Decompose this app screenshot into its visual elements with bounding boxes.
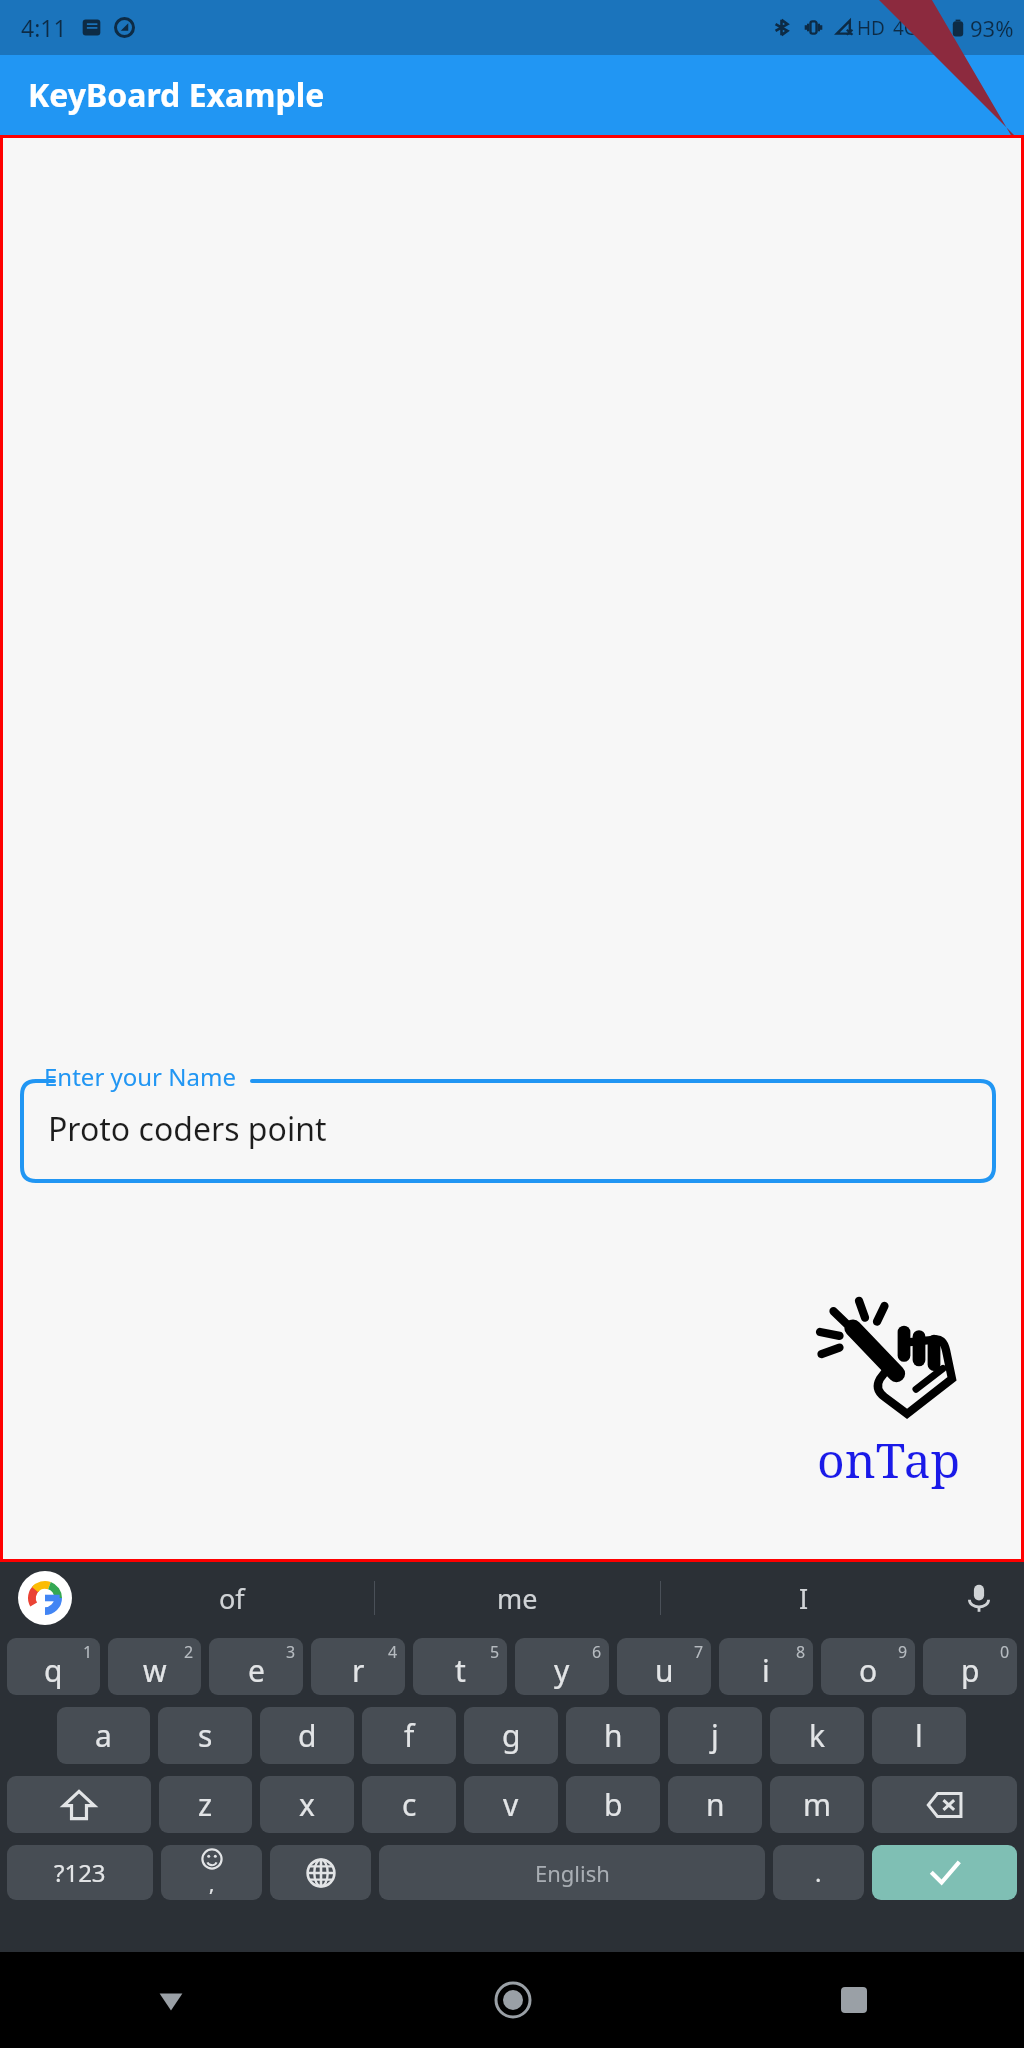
staticText: z <box>198 1784 213 1825</box>
staticText: o <box>859 1650 878 1691</box>
staticText: q <box>44 1650 63 1691</box>
staticText: v <box>503 1784 519 1825</box>
staticText: of <box>219 1580 245 1617</box>
staticText: d <box>298 1715 317 1756</box>
button[interactable]: p <box>923 1638 1017 1695</box>
button[interactable]: v <box>464 1776 558 1833</box>
button[interactable]: me <box>375 1562 660 1634</box>
button[interactable]: Change language <box>270 1845 371 1900</box>
staticText: m <box>803 1784 832 1825</box>
button[interactable]: s <box>158 1707 252 1764</box>
button[interactable]: I <box>661 1562 946 1634</box>
staticText: a <box>95 1715 112 1756</box>
button[interactable]: d <box>260 1707 354 1764</box>
staticText: 8 <box>796 1641 806 1663</box>
button[interactable]: e <box>209 1638 303 1695</box>
staticText: , <box>209 1870 215 1897</box>
staticText: onTap <box>817 1427 961 1492</box>
button[interactable]: m <box>770 1776 864 1833</box>
staticText: ?123 <box>54 1856 106 1889</box>
staticText: y <box>554 1650 570 1691</box>
button[interactable]: English <box>379 1845 765 1900</box>
staticText: h <box>604 1715 623 1756</box>
button[interactable]: ?123 <box>7 1845 153 1900</box>
staticText: Enter your Name <box>44 1060 236 1093</box>
button[interactable]: . <box>773 1845 864 1900</box>
staticText: 0 <box>1000 1641 1010 1663</box>
button[interactable]: i <box>719 1638 813 1695</box>
button[interactable]: b <box>566 1776 660 1833</box>
button[interactable]: f <box>362 1707 456 1764</box>
staticText: w <box>143 1650 167 1691</box>
staticText: 4:11 <box>21 12 67 43</box>
staticText: me <box>497 1580 538 1617</box>
staticText: l <box>915 1715 923 1756</box>
button[interactable]: Backspace <box>872 1776 1017 1833</box>
button[interactable]: t <box>413 1638 507 1695</box>
staticText: c <box>402 1784 417 1825</box>
button[interactable]: w <box>108 1638 201 1695</box>
button[interactable]: g <box>464 1707 558 1764</box>
button[interactable]: Emoji <box>161 1845 262 1900</box>
staticText: HD <box>857 15 885 41</box>
staticText: 4 <box>388 1641 398 1663</box>
staticText: n <box>706 1784 725 1825</box>
button[interactable]: n <box>668 1776 762 1833</box>
staticText: KeyBoard Example <box>28 73 325 117</box>
staticText: k <box>809 1715 826 1756</box>
staticText: 3 <box>286 1641 296 1663</box>
staticText: g <box>502 1715 521 1756</box>
button[interactable]: onTap <box>814 1293 964 1492</box>
staticText: b <box>604 1784 623 1825</box>
button[interactable]: Enter your Name <box>20 1063 996 1183</box>
button[interactable]: a <box>57 1707 150 1764</box>
staticText: e <box>248 1650 265 1691</box>
button[interactable]: q <box>7 1638 100 1695</box>
staticText: u <box>655 1650 674 1691</box>
button[interactable]: y <box>515 1638 609 1695</box>
staticText: t <box>455 1650 466 1691</box>
button[interactable]: Shift <box>7 1776 151 1833</box>
button[interactable]: Home <box>342 1952 683 2048</box>
button[interactable]: Enter <box>872 1845 1017 1900</box>
staticText: 6 <box>592 1641 602 1663</box>
staticText: 7 <box>694 1641 704 1663</box>
staticText: . <box>815 1856 822 1889</box>
button[interactable]: k <box>770 1707 864 1764</box>
staticText: 2 <box>184 1641 194 1663</box>
button[interactable]: j <box>668 1707 762 1764</box>
staticText: 1 <box>83 1641 93 1663</box>
staticText: s <box>198 1715 213 1756</box>
staticText: 4G <box>893 15 918 41</box>
button[interactable]: x <box>260 1776 354 1833</box>
staticText: I <box>799 1580 809 1617</box>
button[interactable]: Back <box>0 1952 342 2048</box>
button[interactable]: c <box>362 1776 456 1833</box>
button[interactable]: r <box>311 1638 405 1695</box>
staticText: i <box>762 1650 770 1691</box>
button[interactable]: Recents <box>683 1952 1024 2048</box>
staticText: Proto coders point <box>48 1107 327 1151</box>
staticText: English <box>535 1858 610 1888</box>
button[interactable]: l <box>872 1707 966 1764</box>
staticText: 9 <box>898 1641 908 1663</box>
button[interactable]: of <box>90 1562 374 1634</box>
staticText: j <box>711 1715 719 1756</box>
button[interactable]: Voice input <box>956 1575 1002 1621</box>
button[interactable]: Google <box>18 1571 72 1625</box>
staticText: 5 <box>490 1641 500 1663</box>
staticText: p <box>961 1650 980 1691</box>
button[interactable]: h <box>566 1707 660 1764</box>
staticText: f <box>404 1715 415 1756</box>
staticText: r <box>352 1650 365 1691</box>
button[interactable]: o <box>821 1638 915 1695</box>
staticText: x <box>299 1784 315 1825</box>
button[interactable]: u <box>617 1638 711 1695</box>
button[interactable]: z <box>159 1776 252 1833</box>
staticText: 93% <box>970 13 1014 43</box>
